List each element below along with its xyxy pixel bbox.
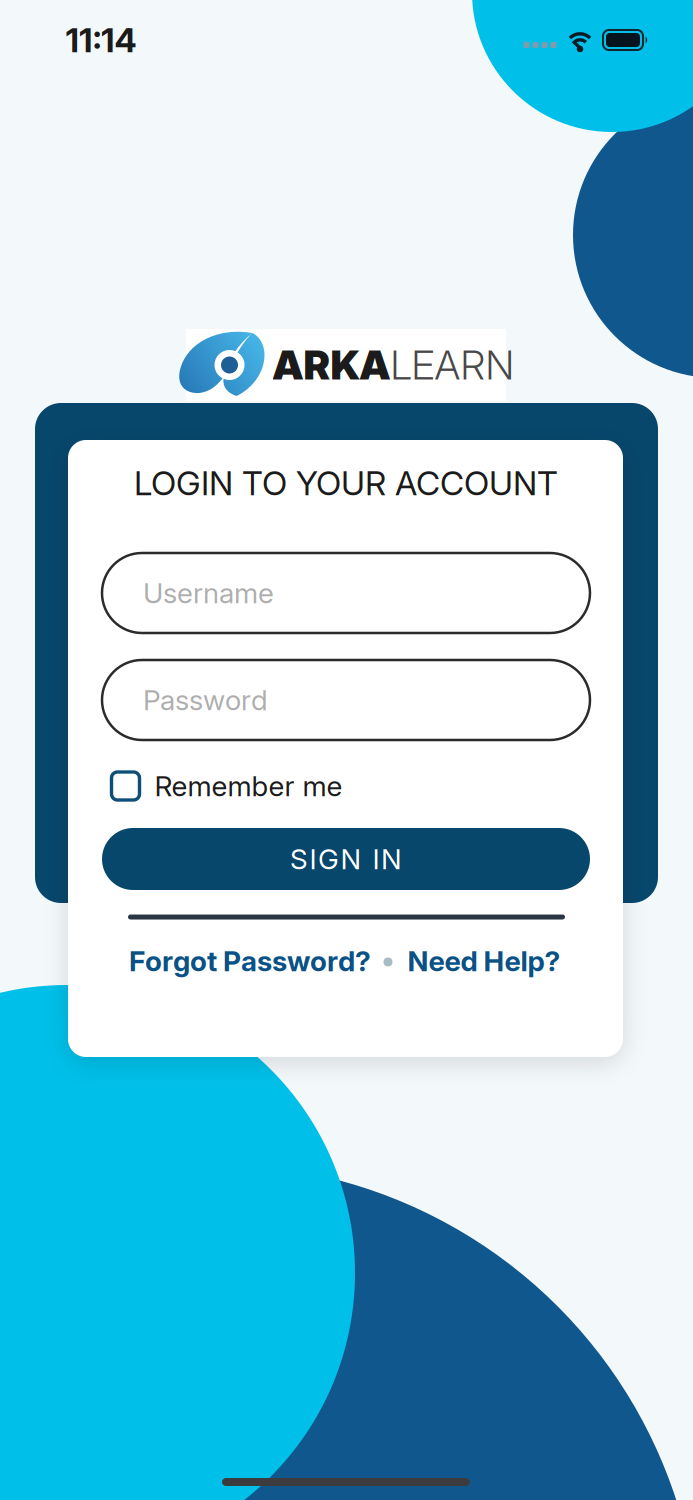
staticText: Need Help? — [407, 944, 560, 977]
button[interactable]: Forgot Password? — [129, 944, 371, 977]
staticText: ARKA — [272, 341, 390, 389]
button[interactable]: Remember me — [111, 769, 342, 802]
button[interactable]: SIGN IN — [102, 828, 590, 890]
staticText: LEARN — [390, 341, 514, 389]
staticText: Username — [143, 576, 274, 609]
staticText: Password — [143, 683, 268, 716]
button[interactable]: Password — [102, 660, 590, 740]
button[interactable]: Username — [102, 553, 590, 633]
staticText: LOGIN TO YOUR ACCOUNT — [134, 463, 558, 503]
staticText: 11:14 — [65, 20, 136, 60]
staticText: Remember me — [154, 769, 342, 802]
staticText: SIGN IN — [290, 842, 402, 875]
button[interactable]: Need Help? — [407, 944, 560, 977]
staticText: Forgot Password? — [129, 944, 371, 977]
